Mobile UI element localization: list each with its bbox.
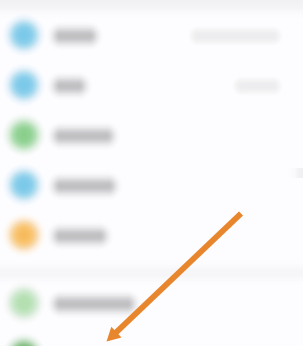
button[interactable] (0, 0, 303, 346)
button[interactable] (0, 0, 303, 346)
button[interactable] (0, 0, 303, 346)
button[interactable] (0, 0, 303, 346)
button[interactable] (0, 0, 303, 346)
button[interactable] (0, 0, 303, 346)
